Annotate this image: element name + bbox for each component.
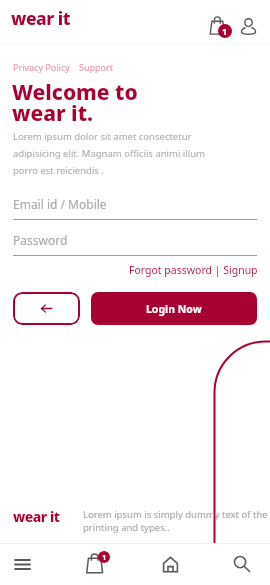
button[interactable]: Home (154, 548, 186, 580)
button[interactable]: Cart, 1 item (208, 14, 232, 38)
staticText: Password (13, 232, 68, 248)
button[interactable]: Login Now (91, 292, 257, 325)
button[interactable]: Password (13, 232, 257, 256)
staticText: Welcome to wear it. (12, 78, 138, 128)
staticText: Login Now (146, 302, 202, 316)
staticText: Lorem ipsum is simply dummy text of the … (83, 508, 270, 534)
button[interactable]: Email id / Mobile (13, 196, 257, 220)
staticText: Lorem ipsum dolor sit amet consectetur a… (13, 130, 225, 177)
staticText: 1 (222, 25, 228, 37)
button[interactable]: Forgot password | Signup (129, 263, 258, 277)
button[interactable]: Privacy Policy (13, 61, 70, 73)
staticText: wear it (11, 6, 71, 30)
button[interactable]: Account (237, 15, 259, 37)
button[interactable]: Cart, 1 item (81, 548, 113, 580)
button[interactable]: Menu (6, 548, 38, 580)
staticText: 1 (102, 552, 107, 562)
staticText: wear it (13, 507, 60, 526)
staticText: Email id / Mobile (13, 196, 107, 212)
button[interactable]: Back (13, 292, 80, 325)
button[interactable]: Search (226, 548, 258, 580)
button[interactable]: Support (79, 61, 113, 73)
